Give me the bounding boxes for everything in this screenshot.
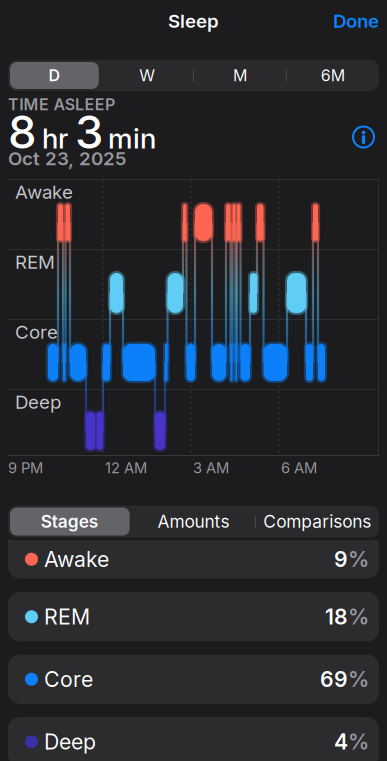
button[interactable]: M xyxy=(193,60,286,91)
staticText: 12 AM xyxy=(105,459,147,477)
button[interactable]: Deep xyxy=(8,717,379,761)
button[interactable]: About Time Asleep xyxy=(351,125,375,149)
staticText: 6 AM xyxy=(281,459,317,477)
button[interactable]: Done xyxy=(309,6,379,36)
staticText: % xyxy=(348,547,369,572)
staticText: 4 xyxy=(334,729,348,754)
staticText: TIME ASLEEP xyxy=(8,95,115,114)
staticText: 9 xyxy=(334,547,348,572)
staticText: 9 PM xyxy=(8,459,43,477)
staticText: 69 xyxy=(320,667,348,692)
button[interactable]: W xyxy=(101,60,194,91)
staticText: % xyxy=(348,604,369,629)
staticText: M xyxy=(233,66,247,85)
staticText: 8 hr 3 min xyxy=(8,105,156,159)
staticText: Awake xyxy=(15,181,73,203)
staticText: Stages xyxy=(41,511,99,532)
staticText: D xyxy=(48,66,60,85)
staticText: Awake xyxy=(44,547,109,572)
button[interactable]: REM xyxy=(8,592,379,641)
staticText: Amounts xyxy=(157,511,229,532)
staticText: Oct 23, 2025 xyxy=(8,147,126,169)
staticText: REM xyxy=(15,251,55,273)
staticText: Deep xyxy=(15,391,61,413)
staticText: Deep xyxy=(44,729,96,754)
button[interactable]: Amounts xyxy=(132,505,255,537)
staticText: REM xyxy=(44,604,90,629)
button[interactable]: Core xyxy=(8,654,379,704)
button[interactable]: D xyxy=(8,60,101,91)
button[interactable]: Comparisons xyxy=(255,505,379,537)
staticText: Done xyxy=(333,10,379,32)
staticText: Core xyxy=(15,321,58,343)
button[interactable]: Stages xyxy=(8,505,132,537)
staticText: Core xyxy=(44,667,93,692)
button[interactable]: 6M xyxy=(286,60,379,91)
staticText: Comparisons xyxy=(263,511,371,532)
staticText: 6M xyxy=(321,66,345,85)
staticText: W xyxy=(139,66,155,85)
staticText: % xyxy=(348,729,369,754)
staticText: 3 AM xyxy=(193,459,229,477)
staticText: 18 xyxy=(325,604,348,629)
button[interactable]: Awake xyxy=(8,540,379,578)
staticText: Sleep xyxy=(168,10,219,32)
staticText: % xyxy=(348,667,369,692)
